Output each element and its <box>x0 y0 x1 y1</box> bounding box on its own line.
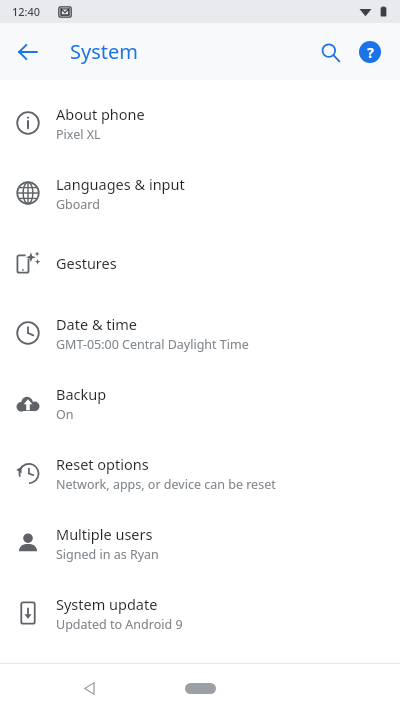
staticText: Gboard <box>56 196 100 213</box>
staticText: Reset options <box>56 454 149 474</box>
staticText: Date & time <box>56 314 137 334</box>
button[interactable]: Date & time <box>0 298 400 368</box>
button[interactable]: Search <box>310 32 350 72</box>
staticText: GMT-05:00 Central Daylight Time <box>56 336 249 353</box>
button[interactable]: Home <box>180 673 220 703</box>
button[interactable]: About phone <box>0 88 400 158</box>
staticText: 12:40 <box>12 4 41 19</box>
button[interactable]: Reset options <box>0 438 400 508</box>
staticText: Languages & input <box>56 174 185 194</box>
staticText: Gestures <box>56 253 117 273</box>
staticText: Backup <box>56 384 107 404</box>
staticText: Multiple users <box>56 524 153 544</box>
button[interactable]: Multiple users <box>0 508 400 578</box>
button[interactable]: Languages & input <box>0 158 400 228</box>
staticText: Pixel XL <box>56 126 101 143</box>
button[interactable]: Gestures <box>0 228 400 298</box>
button[interactable]: Backup <box>0 368 400 438</box>
button[interactable]: Back <box>69 668 109 708</box>
button[interactable]: System update <box>0 578 400 648</box>
staticText: Updated to Android 9 <box>56 616 183 633</box>
staticText: On <box>56 406 74 423</box>
staticText: ? <box>367 43 374 62</box>
staticText: Signed in as Ryan <box>56 546 159 563</box>
button[interactable]: Back <box>8 32 48 72</box>
button[interactable]: Help <box>350 32 390 72</box>
staticText: Network, apps, or device can be reset <box>56 476 276 493</box>
staticText: System <box>70 38 138 65</box>
staticText: About phone <box>56 104 145 124</box>
staticText: System update <box>56 594 158 614</box>
